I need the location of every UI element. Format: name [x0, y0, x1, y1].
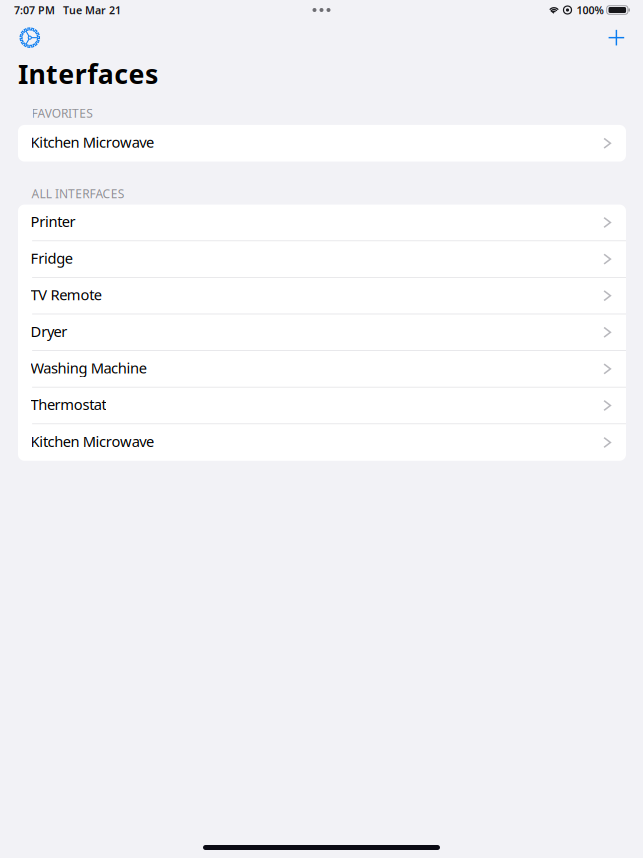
- staticText: Printer: [31, 212, 75, 231]
- staticText: Washing Machine: [31, 358, 147, 377]
- staticText: 100%: [576, 3, 603, 17]
- staticText: FAVORITES: [31, 105, 93, 121]
- staticText: Kitchen Microwave: [31, 432, 154, 451]
- staticText: ALL INTERFACES: [31, 186, 125, 201]
- button[interactable]: TV Remote: [18, 278, 626, 314]
- staticText: Kitchen Microwave: [31, 132, 154, 152]
- button[interactable]: Thermostat: [18, 388, 626, 424]
- staticText: Interfaces: [18, 56, 158, 91]
- button[interactable]: Printer: [18, 205, 626, 241]
- button[interactable]: Kitchen Microwave: [18, 125, 626, 161]
- staticText: Tue Mar 21: [63, 3, 121, 17]
- staticText: Thermostat: [31, 395, 106, 414]
- button[interactable]: Settings: [14, 22, 46, 53]
- staticText: 7:07 PM: [14, 3, 55, 17]
- button[interactable]: Washing Machine: [18, 351, 626, 388]
- button[interactable]: Kitchen Microwave: [18, 424, 626, 461]
- button[interactable]: Fridge: [18, 241, 626, 278]
- staticText: TV Remote: [31, 285, 102, 304]
- button[interactable]: Add interface: [601, 22, 632, 53]
- staticText: Dryer: [31, 321, 67, 341]
- button[interactable]: Dryer: [18, 314, 626, 351]
- staticText: Fridge: [31, 248, 73, 268]
